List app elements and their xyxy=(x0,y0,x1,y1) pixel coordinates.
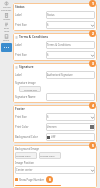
button[interactable]: 6 xyxy=(46,21,95,29)
staticText: 3 xyxy=(92,61,94,66)
staticText: Label xyxy=(15,43,46,47)
staticText: Footer xyxy=(15,107,25,111)
button[interactable]: Step 5 xyxy=(89,142,96,149)
staticText: Choose File xyxy=(24,88,37,91)
button[interactable]: Choose from Desktop xyxy=(15,152,37,159)
staticText: 6 xyxy=(47,53,91,57)
button[interactable]: More options xyxy=(1,43,12,52)
button[interactable]: Step 6 xyxy=(46,176,53,183)
staticText: Print Color xyxy=(15,125,46,129)
staticText: Choose from Desktop xyxy=(16,154,36,157)
staticText: Table xyxy=(4,30,10,33)
staticText: Header xyxy=(3,18,11,21)
staticText: Background Image xyxy=(15,147,40,151)
staticText: #fff xyxy=(51,135,94,139)
button[interactable]: Center center xyxy=(15,166,95,174)
staticText: 1 xyxy=(92,1,94,6)
button[interactable]: Footer xyxy=(0,33,13,42)
button[interactable]: Customize your footer content xyxy=(15,185,56,186)
staticText: Print Size xyxy=(15,115,46,119)
staticText: Status xyxy=(15,5,25,9)
button[interactable]: 6 xyxy=(46,51,95,59)
staticText: Signature Name xyxy=(15,95,46,99)
button[interactable]: Header xyxy=(0,12,13,21)
staticText: 5 xyxy=(92,143,94,148)
button[interactable]: Step 1 xyxy=(89,0,96,7)
staticText: Terms & Conditions xyxy=(47,43,94,47)
staticText: Security xyxy=(3,6,11,9)
button[interactable]: Step 2 xyxy=(89,30,96,37)
staticText: Center center xyxy=(16,168,91,172)
staticText: Print Size xyxy=(15,23,46,27)
button[interactable]: Step 4 xyxy=(89,102,96,109)
staticText: Terms & Conditions xyxy=(19,35,48,39)
button[interactable]: Choose from Gallery xyxy=(39,152,61,159)
staticText: Image Position xyxy=(15,161,34,165)
staticText: 6 xyxy=(47,23,91,27)
button[interactable] xyxy=(46,93,95,101)
staticText: Label xyxy=(15,73,46,77)
staticText: 6 xyxy=(49,177,51,182)
staticText: Status xyxy=(47,13,94,17)
button[interactable]: Terms & Conditions xyxy=(46,41,95,49)
staticText: Properties xyxy=(1,9,12,12)
button[interactable]: Authorized Signature xyxy=(46,71,95,79)
button[interactable]: 6 xyxy=(46,113,95,121)
staticText: Signature image xyxy=(15,81,36,85)
staticText: Label xyxy=(15,13,46,17)
button[interactable]: Choose File xyxy=(19,86,41,92)
staticText: Signature xyxy=(19,65,34,69)
staticText: Body xyxy=(4,27,9,30)
staticText: #nnnnn xyxy=(47,125,90,129)
button[interactable]: #nnnnn xyxy=(46,123,95,131)
staticText: Footer xyxy=(3,39,10,42)
button[interactable]: Status xyxy=(46,11,95,19)
button[interactable]: Body xyxy=(0,21,13,33)
staticText: Authorized Signature xyxy=(47,73,94,77)
button[interactable]: #fff xyxy=(46,133,95,141)
staticText: Background Color xyxy=(15,135,46,139)
staticText: Choose from Gallery xyxy=(40,154,60,157)
button[interactable]: Show Page Number xyxy=(15,177,45,182)
staticText: 2 xyxy=(92,31,94,36)
button[interactable]: Security xyxy=(0,0,13,12)
button[interactable]: Step 3 xyxy=(89,60,96,67)
button[interactable]: Step 7 xyxy=(54,185,61,186)
staticText: Print Size xyxy=(15,53,46,57)
staticText: Show Page Number xyxy=(19,178,45,182)
staticText: 4 xyxy=(92,103,94,108)
staticText: 6 xyxy=(47,115,91,119)
